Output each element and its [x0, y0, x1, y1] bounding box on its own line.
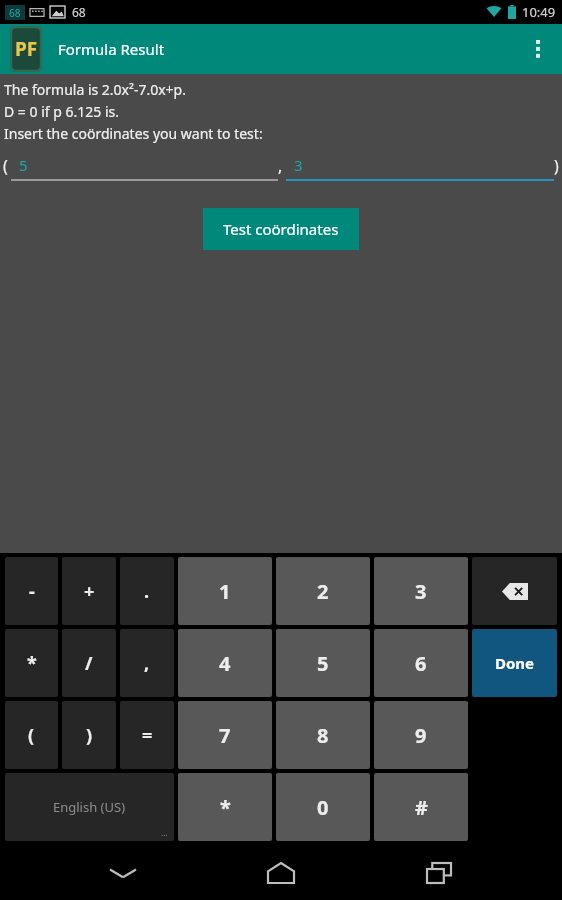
staticText: -: [29, 579, 35, 604]
button[interactable]: Done: [472, 629, 557, 697]
button[interactable]: 3: [374, 557, 468, 625]
staticText: =: [142, 723, 153, 748]
staticText: ): [86, 723, 93, 748]
button[interactable]: #: [374, 773, 468, 841]
button[interactable]: Hide keyboard: [88, 845, 158, 900]
button[interactable]: 1: [178, 557, 272, 625]
staticText: 9: [415, 722, 427, 749]
staticText: 4: [219, 650, 231, 677]
staticText: ): [554, 155, 559, 177]
button[interactable]: +: [62, 557, 116, 625]
button[interactable]: 5: [11, 151, 278, 181]
button[interactable]: /: [62, 629, 116, 697]
staticText: 10:49: [522, 3, 556, 21]
button[interactable]: 5: [276, 629, 370, 697]
button[interactable]: ,: [120, 629, 174, 697]
button[interactable]: ): [62, 701, 116, 769]
staticText: ...: [161, 827, 168, 838]
staticText: Test coördinates: [223, 219, 339, 239]
button[interactable]: Backspace: [472, 557, 557, 625]
staticText: (: [28, 723, 35, 748]
staticText: *: [220, 794, 231, 821]
button[interactable]: Test coördinates: [203, 208, 359, 250]
staticText: .: [144, 579, 150, 604]
button[interactable]: -: [5, 557, 58, 625]
staticText: 68: [9, 6, 21, 20]
button[interactable]: 3: [286, 151, 554, 181]
button[interactable]: 7: [178, 701, 272, 769]
staticText: 68: [72, 4, 86, 20]
staticText: 3: [294, 155, 303, 175]
staticText: 1: [219, 578, 231, 605]
staticText: ,: [144, 651, 150, 676]
button[interactable]: 2: [276, 557, 370, 625]
staticText: 8: [317, 722, 329, 749]
button[interactable]: =: [120, 701, 174, 769]
staticText: 6: [415, 650, 427, 677]
button[interactable]: 8: [276, 701, 370, 769]
staticText: +: [84, 579, 95, 604]
staticText: 0: [317, 794, 329, 821]
staticText: (: [3, 155, 8, 177]
button[interactable]: More options: [514, 24, 562, 74]
button[interactable]: .: [120, 557, 174, 625]
button[interactable]: Home: [246, 845, 316, 900]
staticText: D = 0 if p 6.125 is.: [4, 102, 119, 121]
button[interactable]: 4: [178, 629, 272, 697]
staticText: /: [85, 651, 93, 676]
staticText: PF: [15, 36, 38, 62]
button[interactable]: 9: [374, 701, 468, 769]
button[interactable]: 6: [374, 629, 468, 697]
button[interactable]: Recent apps: [404, 845, 474, 900]
staticText: *: [27, 651, 37, 676]
staticText: Formula Result: [58, 39, 165, 59]
button[interactable]: *: [178, 773, 272, 841]
staticText: The formula is 2.0x²-7.0x+p.: [4, 80, 186, 99]
staticText: 5: [317, 650, 329, 677]
staticText: Done: [495, 653, 535, 673]
staticText: ,: [278, 155, 283, 177]
button[interactable]: English (US): [5, 773, 174, 841]
staticText: English (US): [53, 798, 126, 816]
button[interactable]: *: [5, 629, 58, 697]
staticText: #: [415, 794, 428, 821]
staticText: 3: [415, 578, 427, 605]
staticText: Insert the coördinates you want to test:: [4, 124, 263, 143]
staticText: 2: [317, 578, 329, 605]
button[interactable]: (: [5, 701, 58, 769]
staticText: 7: [219, 722, 231, 749]
staticText: 5: [19, 155, 28, 175]
button[interactable]: 0: [276, 773, 370, 841]
